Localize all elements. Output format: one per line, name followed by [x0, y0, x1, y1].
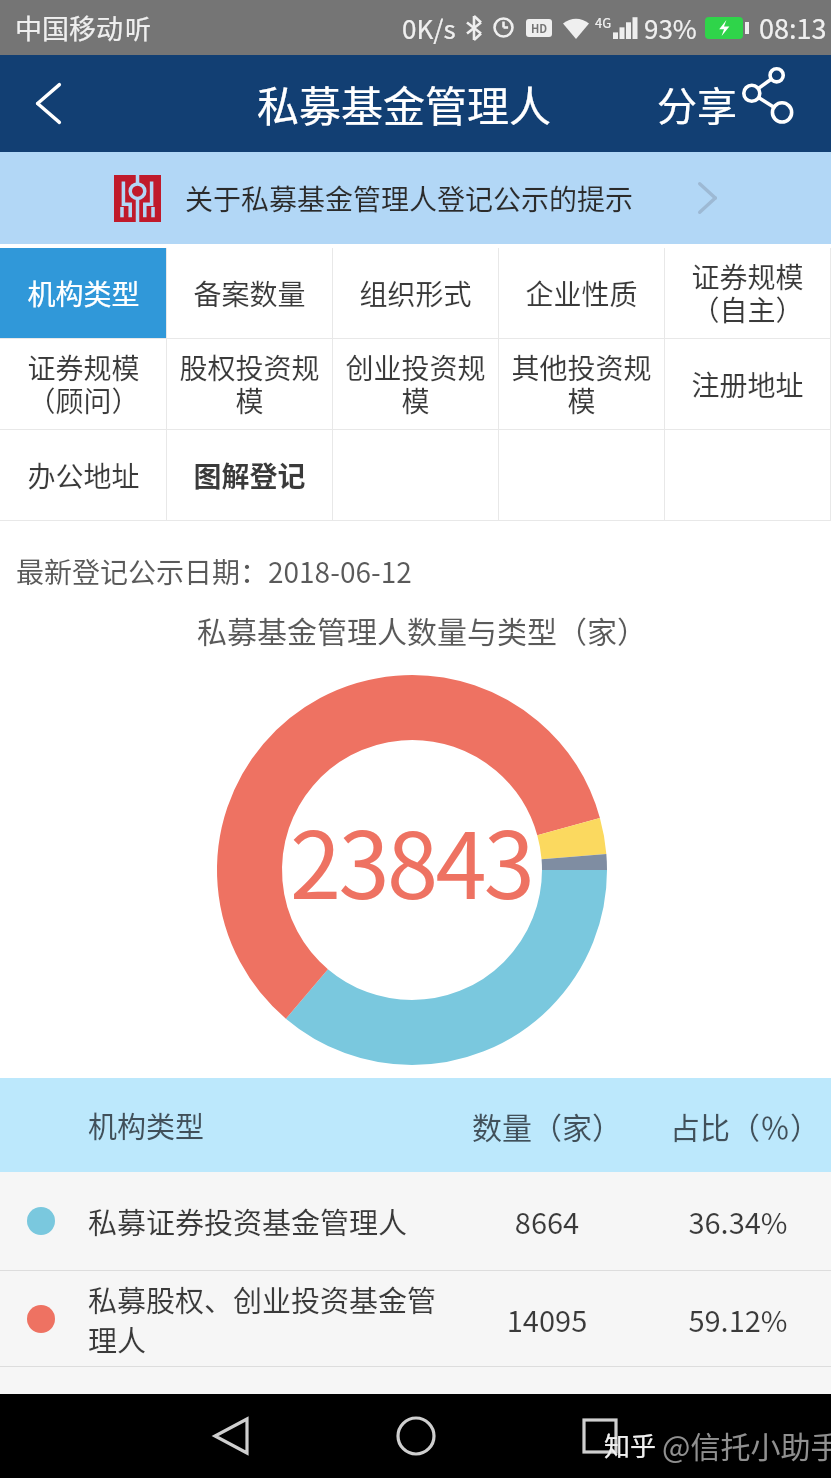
staticText: 听: [125, 9, 152, 47]
button[interactable]: 私募证券投资基金管理人: [0, 1172, 831, 1270]
staticText: HD: [531, 20, 548, 36]
button[interactable]: 创业投资规模: [333, 339, 498, 429]
staticText: 组织形式: [359, 273, 472, 314]
staticText: 最新登记公示日期：2018-06-12: [16, 551, 412, 592]
staticText: @信托小助手: [662, 1423, 831, 1466]
staticText: 59.12%: [645, 1298, 831, 1340]
staticText: 备案数量: [193, 273, 306, 314]
staticText: 36.34%: [645, 1200, 831, 1242]
staticText: 企业性质: [525, 273, 638, 314]
staticText: 93%: [644, 9, 697, 47]
button[interactable]: 分享: [657, 75, 795, 133]
staticText: 数量（家）: [447, 1104, 647, 1147]
button[interactable]: 其他投资规模: [499, 339, 664, 429]
staticText: 0K/s: [402, 9, 456, 47]
staticText: 中国移动: [15, 8, 123, 47]
staticText: 知乎: [604, 1426, 662, 1464]
staticText: 办公地址: [27, 455, 140, 496]
staticText: 私募基金管理人: [257, 73, 552, 134]
button[interactable]: 最近任务: [564, 1400, 636, 1472]
staticText: 4G: [595, 13, 612, 32]
staticText: 关于私募基金管理人登记公示的提示: [185, 178, 634, 219]
staticText: 23843: [290, 792, 533, 925]
staticText: 8664: [455, 1200, 639, 1242]
staticText: 注册地址: [691, 364, 804, 405]
button[interactable]: 返回: [195, 1400, 267, 1472]
staticText: 私募证券投资基金管理人: [88, 1200, 468, 1242]
staticText: 机构类型: [88, 1104, 205, 1146]
staticText: 证券规模 （顾问）: [27, 347, 140, 421]
staticText: 08:13: [759, 8, 827, 47]
button[interactable]: 图解登记: [167, 430, 332, 520]
button[interactable]: 办公地址: [0, 430, 166, 520]
staticText: 私募基金管理人数量与类型（家）: [197, 608, 647, 651]
staticText: 占比（％）: [650, 1104, 831, 1147]
staticText: 其他投资规模: [499, 347, 664, 421]
staticText: 证券规模 （自主）: [691, 256, 804, 330]
button[interactable]: 主页: [380, 1400, 452, 1472]
button[interactable]: 注册地址: [665, 339, 830, 429]
staticText: 机构类型: [27, 273, 140, 314]
button[interactable]: 备案数量: [167, 248, 332, 338]
staticText: 分享: [657, 75, 737, 133]
button[interactable]: 私募股权、创业投资基金管 理人: [0, 1271, 831, 1366]
button[interactable]: 证券规模 （顾问）: [0, 339, 166, 429]
staticText: 股权投资规模: [167, 347, 332, 421]
staticText: 创业投资规模: [333, 347, 498, 421]
button[interactable]: 机构类型: [0, 248, 166, 338]
staticText: 私募股权、创业投资基金管 理人: [88, 1278, 468, 1360]
staticText: 14095: [455, 1298, 639, 1340]
button[interactable]: 组织形式: [333, 248, 498, 338]
button[interactable]: 企业性质: [499, 248, 664, 338]
button[interactable]: 股权投资规模: [167, 339, 332, 429]
button[interactable]: 证券规模 （自主）: [665, 248, 830, 338]
staticText: 图解登记: [193, 455, 306, 496]
button[interactable]: 返回: [0, 55, 96, 152]
button[interactable]: 关于私募基金管理人登记公示的提示: [0, 152, 831, 244]
